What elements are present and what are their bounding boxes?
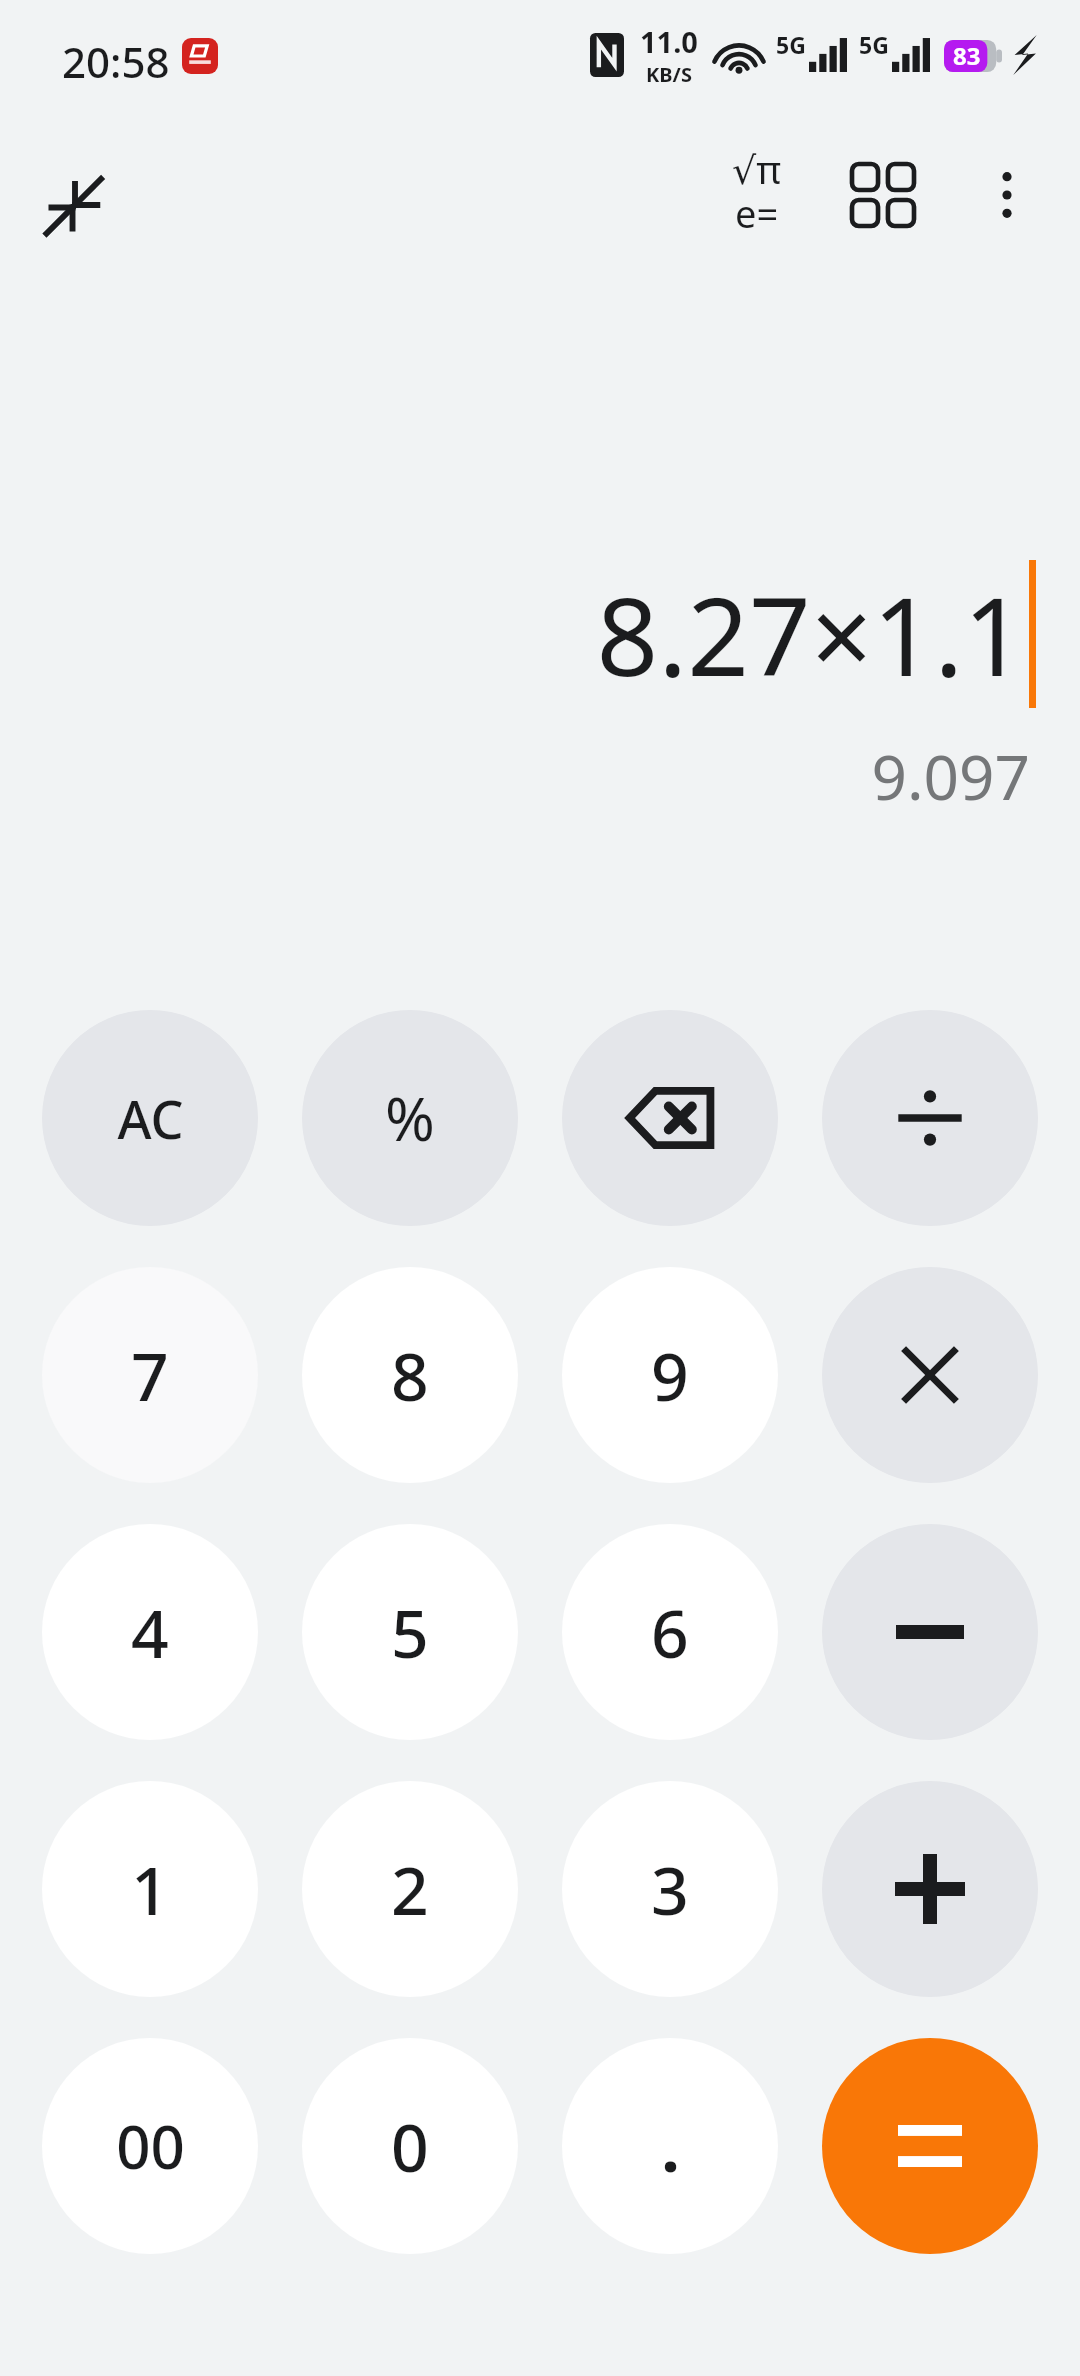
button[interactable]: 5 xyxy=(302,1524,518,1740)
button[interactable]: AC xyxy=(42,1010,258,1226)
button[interactable]: Multiply xyxy=(822,1267,1038,1483)
button[interactable]: 6 xyxy=(562,1524,778,1740)
button[interactable]: Collapse xyxy=(20,150,130,260)
button[interactable]: 1 xyxy=(42,1781,258,1997)
staticText: √π xyxy=(732,143,782,195)
button[interactable]: More options xyxy=(948,136,1066,254)
staticText: 5 xyxy=(391,1587,429,1677)
button[interactable]: 00 xyxy=(42,2038,258,2254)
staticText: 5G xyxy=(859,29,889,60)
button[interactable]: Backspace xyxy=(562,1010,778,1226)
staticText: 83 xyxy=(953,39,981,72)
staticText: 8 xyxy=(391,1330,429,1420)
staticText: AC xyxy=(117,1083,184,1154)
staticText: 9 xyxy=(651,1330,689,1420)
staticText: % xyxy=(385,1077,435,1159)
button[interactable]: Scientific mode xyxy=(698,136,816,254)
staticText: KB/S xyxy=(646,61,692,88)
button[interactable]: Minus xyxy=(822,1524,1038,1740)
button[interactable]: 3 xyxy=(562,1781,778,1997)
button[interactable]: 0 xyxy=(302,2038,518,2254)
button[interactable]: Plus xyxy=(822,1781,1038,1997)
staticText: 2 xyxy=(391,1844,429,1934)
staticText: 0 xyxy=(391,2101,429,2191)
staticText: 1 xyxy=(131,1844,169,1934)
staticText: 8.27×1.1 xyxy=(596,561,1025,708)
button[interactable]: 9 xyxy=(562,1267,778,1483)
staticText: 20:58 xyxy=(62,33,170,90)
button[interactable]: Equals xyxy=(822,2038,1038,2254)
button[interactable]: . xyxy=(562,2038,778,2254)
staticText: 3 xyxy=(651,1844,689,1934)
button[interactable]: Divide xyxy=(822,1010,1038,1226)
staticText: 5G xyxy=(776,29,806,60)
button[interactable]: 2 xyxy=(302,1781,518,1997)
staticText: 9.097 xyxy=(871,734,1030,818)
staticText: 11.0 xyxy=(640,22,698,61)
staticText: 00 xyxy=(116,2105,185,2187)
staticText: 4 xyxy=(131,1587,169,1677)
button[interactable]: Converters xyxy=(824,136,942,254)
staticText: 6 xyxy=(651,1587,689,1677)
button[interactable]: 8 xyxy=(302,1267,518,1483)
button[interactable]: % xyxy=(302,1010,518,1226)
staticText: e= xyxy=(735,187,779,239)
button[interactable]: 7 xyxy=(42,1267,258,1483)
staticText: 7 xyxy=(131,1330,169,1420)
staticText: . xyxy=(661,2101,680,2191)
button[interactable]: 4 xyxy=(42,1524,258,1740)
